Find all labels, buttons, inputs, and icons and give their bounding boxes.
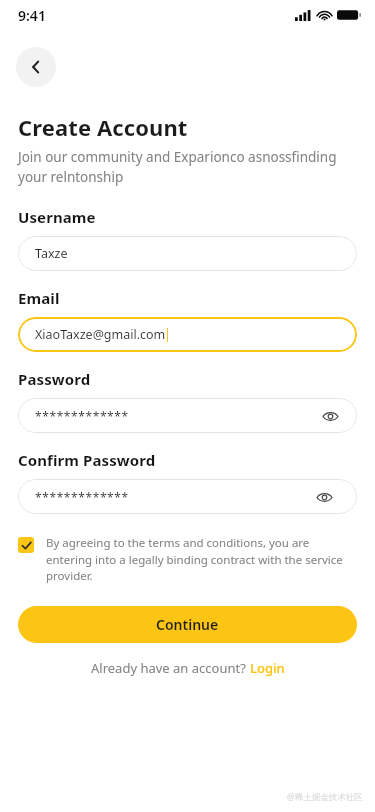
staticText: Confirm Password (18, 450, 156, 470)
staticText: By agreeing to the terms and conditions,… (46, 535, 357, 583)
button[interactable]: ************* (18, 479, 357, 514)
staticText: Login (250, 659, 285, 677)
button[interactable]: Show password (313, 486, 335, 508)
button[interactable]: Taxze (18, 236, 357, 271)
staticText: @稀土掘金技术社区 (287, 791, 363, 803)
staticText: Continue (156, 615, 219, 634)
button[interactable]: XiaoTaxze@gmail.com (18, 317, 357, 352)
staticText: Join our community and Exparionco asnoss… (18, 148, 357, 186)
button[interactable]: By agreeing to the terms and conditions,… (18, 535, 357, 583)
staticText: XiaoTaxze@gmail.com (35, 326, 166, 343)
staticText: Password (18, 369, 91, 389)
button[interactable]: Login (250, 659, 285, 677)
staticText: Create Account (18, 112, 188, 142)
staticText: 9:41 (18, 6, 46, 25)
button[interactable]: Show password (319, 405, 341, 427)
staticText: Username (18, 207, 96, 227)
staticText: Taxze (35, 245, 68, 262)
staticText: Email (18, 288, 60, 308)
staticText: Already have an account? (91, 659, 250, 677)
staticText: ************* (35, 489, 129, 505)
staticText: ************* (35, 408, 129, 424)
button[interactable]: Back (16, 47, 56, 87)
button[interactable]: Continue (18, 606, 357, 643)
button[interactable]: ************* (18, 398, 357, 433)
